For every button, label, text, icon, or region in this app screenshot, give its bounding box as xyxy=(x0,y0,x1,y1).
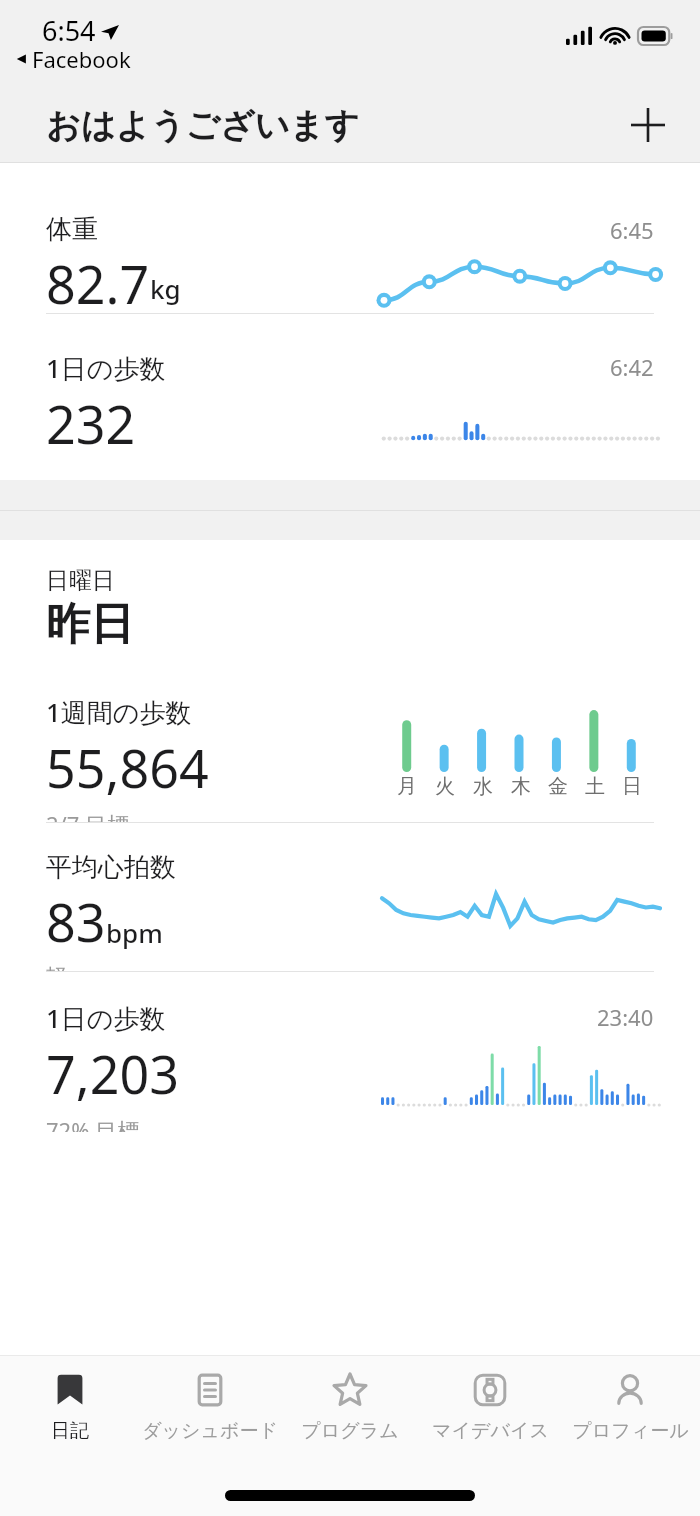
staticText: おはようございます xyxy=(46,104,360,147)
staticText: 7,203 xyxy=(46,1038,179,1109)
staticText: マイデバイス xyxy=(432,1419,549,1443)
other: マイデバイス xyxy=(470,1370,510,1410)
other: プログラム xyxy=(330,1370,370,1410)
button[interactable]: 23:40 xyxy=(0,972,700,1132)
staticText: ダッシュボード xyxy=(142,1419,278,1443)
staticText: 土 xyxy=(585,774,605,799)
staticText: 軽 xyxy=(46,963,68,971)
other: ダッシュボード xyxy=(190,1370,230,1410)
staticText: 日 xyxy=(622,774,642,799)
staticText: 月 xyxy=(397,774,417,799)
button[interactable]: 1週間の歩数 xyxy=(0,682,700,822)
staticText: 55,864 xyxy=(46,732,209,803)
staticText: 火 xyxy=(435,774,455,799)
staticText: プロフィール xyxy=(572,1419,689,1443)
button[interactable]: Add xyxy=(624,101,672,149)
staticText: 昨日 xyxy=(46,597,134,652)
staticText: 1週間の歩数 xyxy=(46,694,192,730)
staticText: kg xyxy=(150,271,181,306)
button[interactable]: ダッシュボード xyxy=(140,1356,280,1474)
staticText: Facebook xyxy=(32,44,131,74)
button[interactable]: 6:42 xyxy=(0,314,700,464)
staticText: 232 xyxy=(46,388,136,459)
staticText: 水 xyxy=(473,774,493,799)
staticText: 6:54 xyxy=(42,12,96,49)
button[interactable]: 平均心拍数 xyxy=(0,823,700,971)
staticText: 82.7 xyxy=(46,248,150,313)
button[interactable]: 6:45 xyxy=(0,163,700,313)
staticText: 6:42 xyxy=(610,352,654,382)
staticText: 1日の歩数 xyxy=(46,1000,166,1036)
staticText: 木 xyxy=(511,774,531,799)
staticText: 2/7 目標 xyxy=(46,809,130,822)
button[interactable]: マイデバイス xyxy=(420,1356,560,1474)
staticText: 72% 目標 xyxy=(46,1115,140,1132)
button[interactable]: 日記 xyxy=(0,1356,140,1474)
staticText: 日曜日 xyxy=(46,566,115,595)
staticText: 1日の歩数 xyxy=(46,350,166,386)
staticText: 日記 xyxy=(51,1419,89,1443)
staticText: bpm xyxy=(106,915,163,950)
staticText: プログラム xyxy=(301,1419,399,1443)
other: 日記 xyxy=(50,1370,90,1410)
staticText: 金 xyxy=(548,774,568,799)
staticText: 体重 xyxy=(46,213,98,246)
staticText: 23:40 xyxy=(597,1002,654,1032)
other: プロフィール xyxy=(610,1370,650,1410)
staticText: 83 xyxy=(46,886,106,957)
staticText: 6:45 xyxy=(610,215,654,245)
staticText: 平均心拍数 xyxy=(46,851,176,884)
button[interactable]: プロフィール xyxy=(560,1356,700,1474)
button[interactable]: プログラム xyxy=(280,1356,420,1474)
